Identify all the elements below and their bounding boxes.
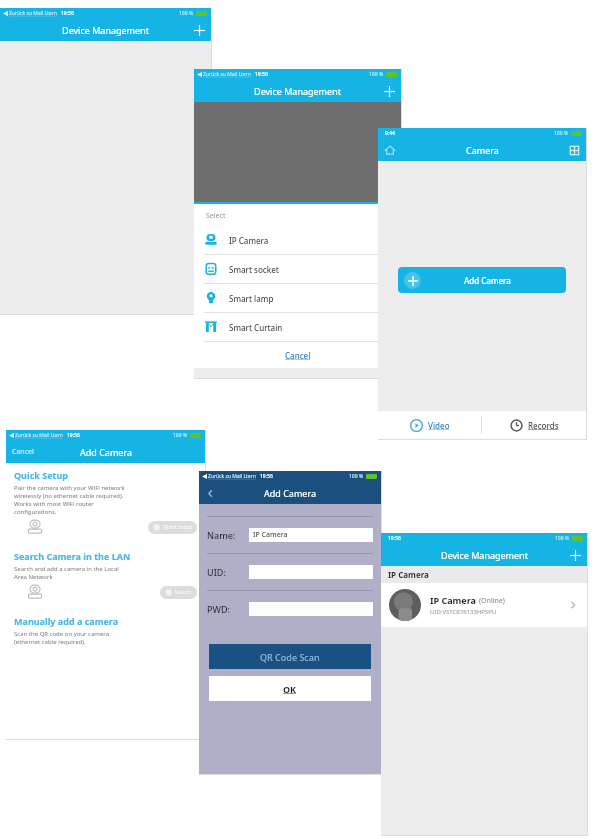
staticText: Zurück zu Mail Ltern	[9, 10, 57, 17]
staticText: Search and add a camera in the Local Are…	[14, 565, 119, 581]
staticText: Cancel	[12, 447, 34, 457]
staticText: (Online)	[479, 596, 505, 606]
staticText: UID:VSTC876133HPSPU	[430, 608, 497, 616]
staticText: QR Code Scan	[260, 651, 320, 663]
staticText: 19:56	[255, 71, 268, 78]
button[interactable]: Search	[165, 586, 192, 599]
button[interactable]: Cancel	[194, 342, 401, 368]
button[interactable]: Smart socket	[194, 255, 401, 284]
staticText: Cancel	[285, 350, 311, 361]
button[interactable]: IP Camera	[194, 226, 401, 255]
button[interactable]: Search Camera in the LAN	[6, 544, 205, 604]
staticText: Quick Setup	[14, 469, 69, 481]
staticText: Smart lamp	[229, 293, 274, 304]
button[interactable]: OK	[209, 676, 371, 701]
staticText: Device Management	[441, 549, 528, 561]
button[interactable]: IP Camera	[389, 583, 579, 627]
staticText: Camera	[466, 144, 499, 156]
staticText: IP Camera	[388, 569, 429, 580]
button[interactable]: Quick Setup	[6, 463, 205, 539]
staticText: Zurück zu Mail Ltern	[203, 71, 251, 78]
button[interactable]: Home	[384, 144, 396, 156]
staticText: 9:44	[385, 130, 395, 137]
staticText: Quick Setup	[163, 524, 192, 531]
staticText: Select	[206, 211, 226, 221]
staticText: Add Camera	[264, 487, 316, 499]
button[interactable]: Add Camera	[398, 267, 566, 293]
button[interactable]: Smart Curtain	[194, 313, 401, 342]
button[interactable]: Smart lamp	[194, 284, 401, 313]
button[interactable]: Manually add a camera	[6, 609, 205, 652]
staticText: Scan the QR code on your camera (etherne…	[14, 630, 110, 646]
staticText: Device Management	[254, 85, 341, 97]
staticText: Add Camera	[80, 446, 132, 458]
staticText: Smart socket	[229, 264, 279, 275]
staticText: Zurück zu Mail Ltern	[15, 432, 63, 439]
staticText: IP Camera	[430, 594, 476, 606]
button[interactable]: Video	[378, 411, 481, 439]
staticText: OK	[283, 683, 297, 695]
staticText: Search	[175, 589, 192, 596]
staticText: 100 %	[349, 473, 364, 480]
staticText: PWD:	[207, 603, 249, 615]
staticText: Pair the camera with your WiFi network w…	[14, 484, 125, 516]
staticText: Search Camera in the LAN	[14, 550, 131, 562]
staticText: 100 %	[173, 432, 188, 439]
button[interactable]: IP Camera	[253, 528, 373, 542]
staticText: IP Camera	[229, 235, 269, 246]
button[interactable]: Add	[384, 86, 395, 97]
staticText: 19:56	[61, 10, 74, 17]
button[interactable]: QR Code Scan	[209, 644, 371, 669]
staticText: Name:	[207, 529, 249, 541]
staticText: UID:	[207, 566, 249, 578]
staticText: 19:56	[67, 432, 80, 439]
button[interactable]: Settings	[569, 145, 580, 156]
staticText: 100 %	[369, 71, 384, 78]
button[interactable]: Quick Setup	[153, 521, 192, 534]
button[interactable]: Cancel	[12, 447, 34, 457]
staticText: Records	[528, 420, 559, 431]
staticText: 19:56	[388, 535, 401, 542]
staticText: Manually add a camera	[14, 615, 119, 627]
staticText: IP Camera	[253, 530, 288, 540]
staticText: Video	[428, 420, 450, 431]
staticText: Device Management	[62, 24, 149, 36]
staticText: 100 %	[554, 130, 569, 137]
staticText: 100 %	[179, 10, 194, 17]
staticText: 100 %	[555, 535, 570, 542]
staticText: Add Camera	[464, 275, 511, 286]
button[interactable]: Add	[194, 25, 205, 36]
button[interactable]: Back	[205, 488, 216, 499]
button[interactable]: Records	[482, 411, 586, 439]
button[interactable]: Add	[570, 550, 581, 561]
staticText: Smart Curtain	[229, 322, 283, 333]
staticText: 19:56	[260, 473, 273, 480]
staticText: Zurück zu Mail Ltern	[208, 473, 256, 480]
